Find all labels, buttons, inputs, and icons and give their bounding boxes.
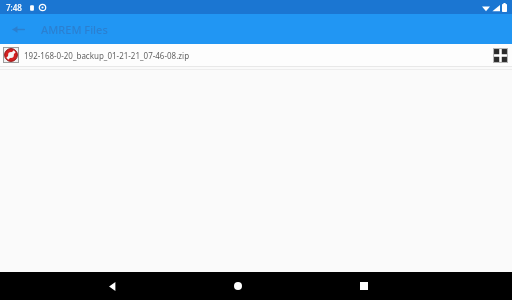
button[interactable]: Back: [6, 17, 30, 41]
staticText: AMREM Files: [41, 22, 108, 37]
button[interactable]: Expand: [490, 45, 510, 65]
button[interactable]: 192-168-0-20_backup_01-21-21_07-46-08.zi…: [0, 44, 512, 66]
button[interactable]: Recent apps: [351, 273, 377, 299]
button[interactable]: Back: [99, 273, 125, 299]
button[interactable]: Home: [225, 273, 251, 299]
staticText: 192-168-0-20_backup_01-21-21_07-46-08.zi…: [24, 50, 490, 61]
staticText: 7:48: [6, 2, 22, 13]
